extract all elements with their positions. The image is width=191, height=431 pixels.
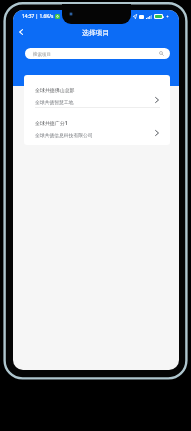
button[interactable]: 搜索项目 (25, 48, 170, 59)
staticText: 全球共德信息科技有限公司 (35, 132, 93, 138)
staticText: 全球共德智慧工地 (35, 99, 74, 105)
button[interactable]: 全球共德广分1 (24, 108, 170, 141)
staticText: 选择项目 (82, 28, 110, 37)
button[interactable]: Back (14, 25, 28, 39)
staticText: 14:37 | 1.6K/s (22, 13, 54, 20)
staticText: 搜索项目 (33, 52, 51, 58)
staticText: 全球共德广分1 (35, 120, 68, 127)
staticText: 全球共德佛山总部 (35, 87, 75, 93)
button[interactable]: 全球共德佛山总部 (24, 75, 170, 108)
